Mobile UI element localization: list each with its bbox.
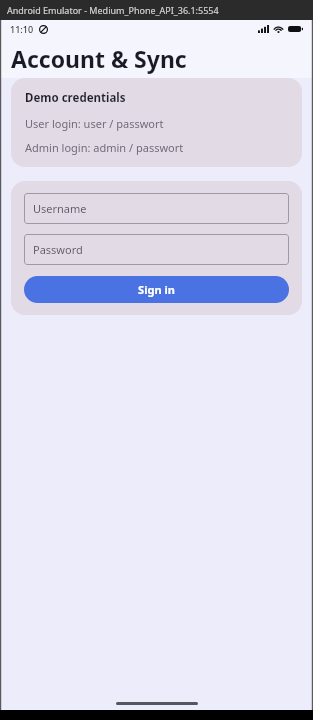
staticText: Password — [33, 242, 83, 257]
staticText: 11:10 — [10, 23, 34, 35]
button[interactable]: Password — [24, 234, 289, 265]
other: Cellular signal — [258, 25, 269, 33]
button[interactable]: Sign in — [24, 276, 289, 303]
other: Wi-Fi — [273, 25, 284, 33]
other: Battery — [288, 25, 303, 33]
staticText: User login: user / passwort — [25, 116, 164, 131]
staticText: Username — [33, 201, 87, 216]
other: Do not disturb — [39, 25, 48, 34]
staticText: Demo credentials — [25, 90, 126, 106]
staticText: Sign in — [138, 282, 175, 297]
staticText: Admin login: admin / passwort — [25, 140, 184, 155]
button[interactable]: Username — [24, 193, 289, 224]
staticText: Android Emulator - Medium_Phone_API_36.1… — [7, 4, 219, 16]
staticText: Account & Sync — [11, 43, 187, 74]
